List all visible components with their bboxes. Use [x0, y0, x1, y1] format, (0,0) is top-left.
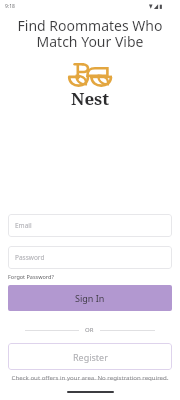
- staticText: OR: [85, 326, 94, 334]
- button[interactable]: Sign In: [8, 285, 172, 311]
- button[interactable]: Password: [8, 246, 172, 269]
- button[interactable]: Email: [8, 214, 172, 237]
- staticText: Register: [73, 351, 108, 363]
- staticText: Nest: [71, 87, 110, 110]
- staticText: Password: [15, 253, 45, 262]
- staticText: 9:18: [5, 3, 15, 10]
- other: Status icons: [149, 4, 162, 9]
- staticText: Sign In: [75, 292, 105, 304]
- button[interactable]: Check out offers in your area. No regist…: [8, 373, 172, 381]
- button[interactable]: Forgot Password?: [8, 273, 54, 280]
- staticText: Find Roommates Who Match Your Vibe: [0, 16, 180, 51]
- button[interactable]: Register: [8, 343, 172, 370]
- staticText: Email: [15, 221, 32, 230]
